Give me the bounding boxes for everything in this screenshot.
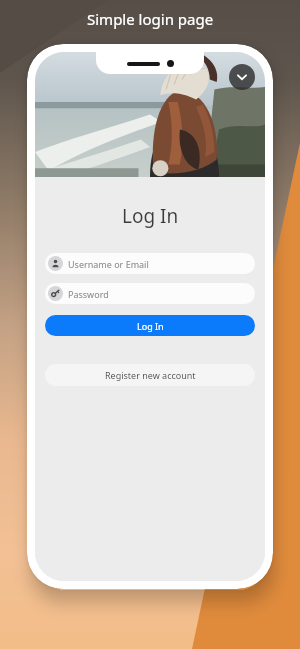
button[interactable]: Collapse [229,64,255,90]
button[interactable]: Password [48,283,255,304]
staticText: Register new account [105,369,196,381]
button[interactable]: Register new account [45,364,255,386]
staticText: Simple login page [87,9,214,29]
button[interactable]: Log In [45,315,255,336]
staticText: Log In [137,320,164,332]
button[interactable]: Username or Email [48,253,255,274]
staticText: Log In [122,203,179,229]
staticText: Password [68,288,109,300]
staticText: Username or Email [68,258,149,270]
